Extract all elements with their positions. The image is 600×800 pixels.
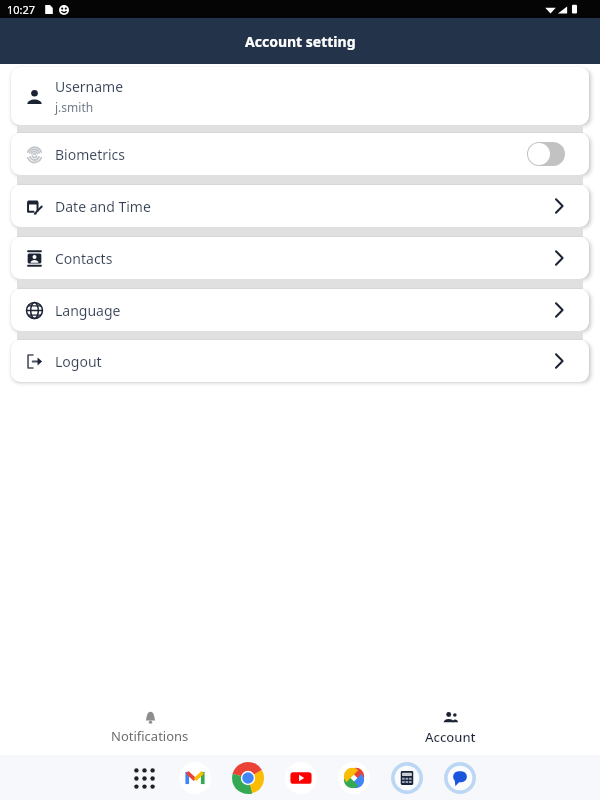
button[interactable]: Biometrics (11, 133, 589, 175)
button[interactable]: Messages (443, 761, 477, 795)
staticText: Account (425, 728, 476, 746)
button[interactable]: Account (300, 710, 600, 746)
button[interactable]: Logout (11, 340, 589, 382)
staticText: Date and Time (55, 197, 151, 216)
button[interactable]: Username (11, 67, 589, 125)
button[interactable]: Chrome (231, 761, 265, 795)
staticText: j.smith (55, 99, 94, 115)
staticText: 10:27 (7, 2, 36, 17)
button[interactable]: All apps (127, 761, 161, 795)
staticText: Notifications (111, 727, 189, 745)
button[interactable]: Biometrics toggle (527, 142, 565, 166)
staticText: Logout (55, 352, 102, 371)
button[interactable]: Contacts (11, 237, 589, 279)
staticText: Username (55, 77, 124, 96)
button[interactable]: Calculator (390, 761, 424, 795)
button[interactable]: Date and Time (11, 185, 589, 227)
button[interactable]: Gmail (178, 761, 212, 795)
staticText: Account setting (245, 32, 356, 51)
button[interactable]: YouTube (284, 761, 318, 795)
staticText: Contacts (55, 249, 113, 268)
staticText: Biometrics (55, 145, 126, 164)
staticText: Language (55, 301, 121, 320)
button[interactable]: Account setting (0, 18, 600, 64)
button[interactable]: Photos (337, 761, 371, 795)
button[interactable]: Language (11, 289, 589, 331)
button[interactable]: Notifications (0, 710, 300, 746)
